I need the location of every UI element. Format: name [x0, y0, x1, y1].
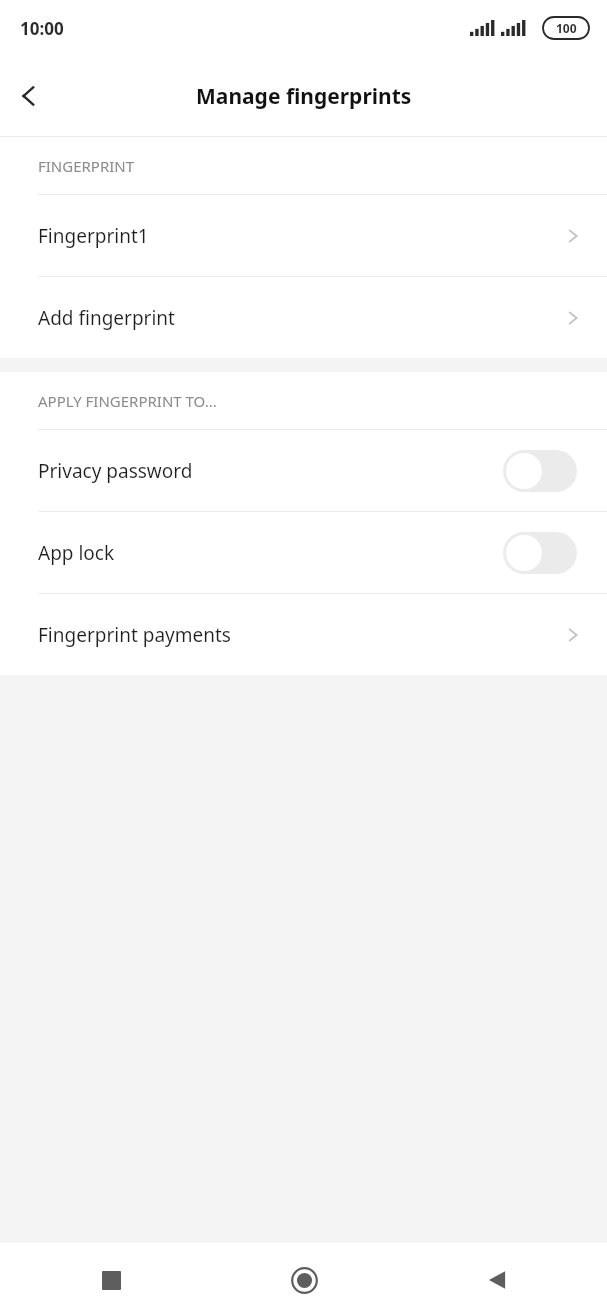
staticText: APPLY FINGERPRINT TO... — [38, 391, 217, 411]
button[interactable]: Recents — [83, 1252, 139, 1308]
button[interactable]: Back — [0, 67, 58, 125]
button[interactable]: Fingerprint payments — [0, 594, 607, 675]
staticText: Fingerprint payments — [38, 622, 563, 648]
button[interactable]: Privacy password — [0, 430, 607, 511]
staticText: Privacy password — [38, 458, 503, 484]
staticText: 100 — [556, 20, 577, 36]
staticText: App lock — [38, 540, 503, 566]
staticText: Add fingerprint — [38, 305, 563, 331]
button[interactable]: Home — [276, 1252, 332, 1308]
staticText: Fingerprint1 — [38, 223, 563, 249]
button[interactable]: App lock — [0, 512, 607, 593]
staticText: FINGERPRINT — [38, 156, 135, 176]
button[interactable]: Back — [469, 1252, 525, 1308]
staticText: 10:00 — [20, 17, 64, 40]
button[interactable]: Add fingerprint — [0, 277, 607, 358]
staticText: Manage fingerprints — [196, 82, 412, 111]
button[interactable]: Fingerprint1 — [0, 195, 607, 276]
